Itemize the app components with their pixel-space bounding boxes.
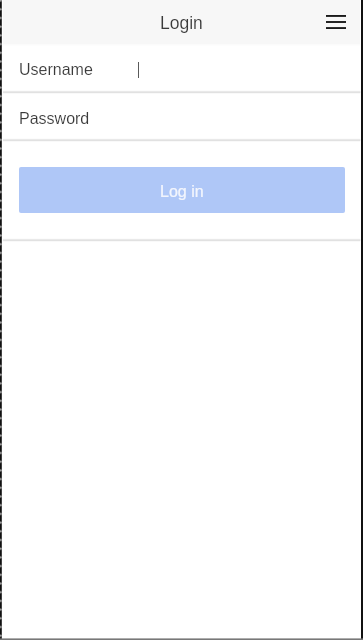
staticText: Login — [160, 13, 203, 33]
button[interactable]: Open navigation menu — [322, 8, 350, 36]
staticText: Username — [19, 61, 93, 79]
staticText: Log in — [160, 183, 204, 201]
staticText: Password — [19, 110, 90, 128]
button[interactable]: Password — [0, 93, 363, 140]
button[interactable]: Username — [0, 44, 363, 92]
button[interactable]: Log in — [19, 167, 345, 213]
